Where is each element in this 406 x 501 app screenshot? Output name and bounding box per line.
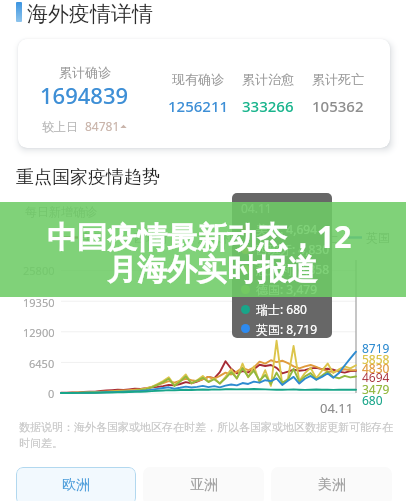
staticText: 04.11 xyxy=(241,200,272,216)
staticText: 累计死亡 xyxy=(312,71,364,87)
staticText: 1694839 xyxy=(40,80,129,110)
staticText: 4830 xyxy=(362,360,390,376)
staticText: 12900 xyxy=(23,325,55,340)
staticText: 0 xyxy=(48,386,55,401)
staticText: 英国 xyxy=(366,230,390,245)
staticText: 美国: 4,694 xyxy=(256,221,318,237)
staticText: 105362 xyxy=(312,96,364,116)
staticText: 3479 xyxy=(362,381,390,397)
staticText: 德国: 3,479 xyxy=(256,281,318,297)
staticText: 意大利: 5,858 xyxy=(256,261,330,277)
staticText: 每日新增确诊 xyxy=(25,204,97,219)
staticText: 德国 xyxy=(262,230,286,245)
button[interactable]: 美洲 xyxy=(271,467,392,501)
staticText: 西班牙 xyxy=(134,230,170,245)
staticText: 19350 xyxy=(23,295,55,310)
staticText: 美洲 xyxy=(318,476,346,494)
staticText: 680 xyxy=(362,392,383,408)
staticText: 英国: 8,719 xyxy=(256,321,318,337)
staticText: 数据说明：海外各国家或地区存在时差，所以各国家或地区数据更新可能存在时间差。 xyxy=(19,420,393,450)
staticText: 累计确诊 xyxy=(59,64,111,80)
staticText: 5858 xyxy=(362,351,390,367)
staticText: 欧洲 xyxy=(62,476,90,494)
staticText: 现有确诊 xyxy=(172,71,224,87)
button[interactable]: 亚洲 xyxy=(143,467,264,501)
staticText: 84781 xyxy=(85,118,120,134)
staticText: 1256211 xyxy=(168,96,229,116)
staticText: 04.11 xyxy=(320,399,354,417)
staticText: 意大利 xyxy=(198,230,234,245)
staticText: 25800 xyxy=(23,263,55,278)
staticText: 瑞士: 680 xyxy=(256,301,307,317)
staticText: 重点国家疫情趋势 xyxy=(16,166,160,189)
staticText: 美国 xyxy=(82,230,106,245)
staticText: 月海外实时报道 xyxy=(107,251,317,289)
staticText: 中国疫情最新动态，12 xyxy=(47,216,352,257)
staticText: 较上日 xyxy=(42,119,78,134)
staticText: 累计治愈 xyxy=(242,71,294,87)
staticText: 海外疫情详情 xyxy=(27,1,153,27)
button[interactable]: 欧洲 xyxy=(16,467,136,501)
staticText: 4694 xyxy=(362,369,390,385)
staticText: 8719 xyxy=(362,340,390,356)
staticText: 亚洲 xyxy=(190,476,218,494)
staticText: 瑞士 xyxy=(314,230,338,245)
staticText: 6450 xyxy=(29,356,55,371)
staticText: 西班牙: 4,830 xyxy=(256,241,330,257)
staticText: 333266 xyxy=(242,96,294,116)
